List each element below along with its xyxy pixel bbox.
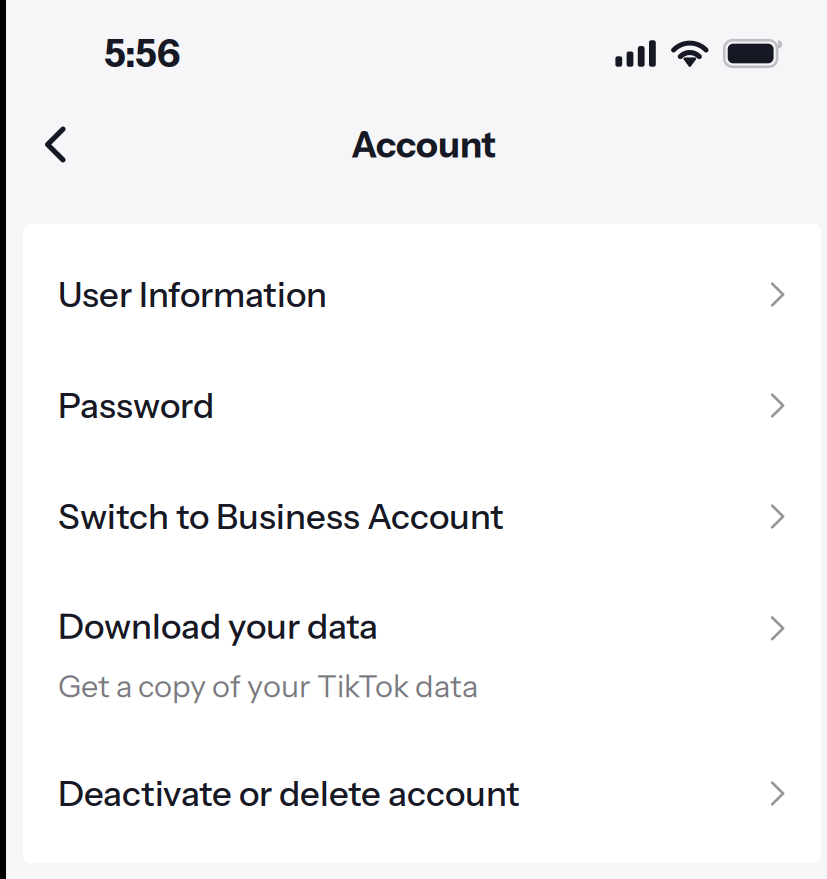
button[interactable]: Switch to Business Account xyxy=(23,461,821,572)
staticText: 5:56 xyxy=(104,31,180,76)
staticText: Get a copy of your TikTok data xyxy=(58,667,478,705)
button[interactable]: Deactivate or delete account xyxy=(23,738,821,849)
staticText: User Information xyxy=(58,273,327,316)
staticText: Deactivate or delete account xyxy=(58,772,520,815)
button[interactable]: Download your data xyxy=(23,572,821,738)
staticText: Switch to Business Account xyxy=(58,495,504,538)
staticText: Password xyxy=(58,384,214,427)
staticText: Download your data xyxy=(58,605,378,647)
button[interactable]: Password xyxy=(23,350,821,461)
button[interactable]: Back xyxy=(26,110,90,178)
button[interactable]: User Information xyxy=(23,239,821,350)
staticText: Account xyxy=(351,122,496,166)
